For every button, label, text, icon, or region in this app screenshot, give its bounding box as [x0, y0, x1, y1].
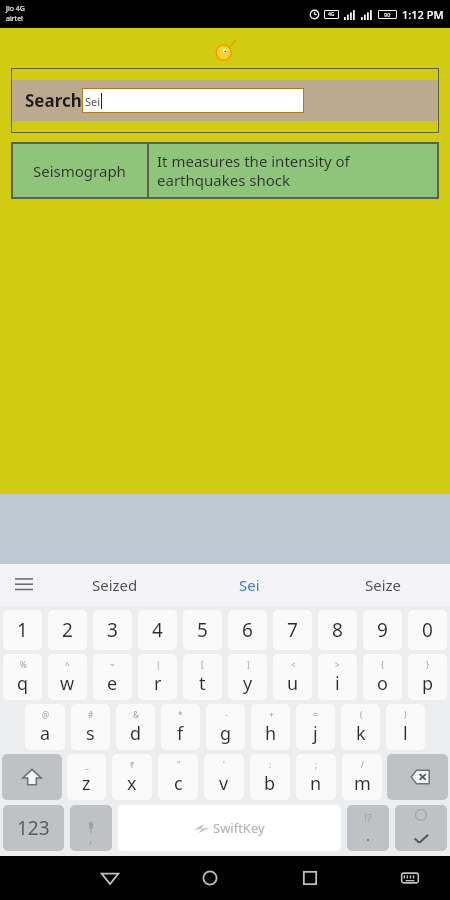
staticText: h: [265, 721, 277, 746]
staticText: /: [361, 759, 364, 770]
button[interactable]: 123: [3, 805, 64, 851]
button[interactable]: Menu: [8, 569, 40, 601]
staticText: w: [60, 671, 75, 696]
button[interactable]: /: [342, 754, 382, 800]
button[interactable]: 0: [408, 610, 447, 650]
button[interactable]: 1: [3, 610, 42, 650]
staticText: f: [177, 721, 184, 746]
staticText: !?: [364, 810, 372, 825]
button[interactable]: ': [204, 754, 244, 800]
button[interactable]: {: [363, 654, 402, 700]
staticText: 1: [17, 617, 28, 643]
staticText: j: [313, 721, 318, 746]
button[interactable]: Recents: [290, 858, 330, 898]
button[interactable]: &: [116, 704, 155, 750]
staticText: c: [174, 771, 183, 796]
button[interactable]: -: [206, 704, 245, 750]
button[interactable]: Home: [190, 858, 230, 898]
staticText: u: [287, 671, 299, 696]
button[interactable]: ~: [93, 654, 132, 700]
staticText: d: [130, 721, 142, 746]
staticText: r: [154, 671, 162, 696]
staticText: Seized: [92, 575, 138, 595]
staticText: Jio 4G: [6, 4, 25, 14]
button[interactable]: ): [386, 704, 425, 750]
button[interactable]: Sei: [182, 564, 316, 606]
button[interactable]: 9: [363, 610, 402, 650]
button[interactable]: ": [158, 754, 198, 800]
staticText: [: [201, 659, 204, 670]
button[interactable]: }: [408, 654, 447, 700]
staticText: 7: [287, 617, 298, 643]
button[interactable]: :: [250, 754, 290, 800]
button[interactable]: <: [273, 654, 312, 700]
button[interactable]: Voice input: [70, 805, 112, 851]
staticText: _: [85, 759, 89, 770]
staticText: i: [335, 671, 340, 696]
staticText: =: [313, 709, 318, 720]
staticText: 5: [197, 617, 208, 643]
staticText: t: [199, 671, 206, 696]
button[interactable]: ₹: [112, 754, 152, 800]
staticText: Sei: [85, 94, 101, 109]
button[interactable]: Shift: [2, 754, 62, 800]
button[interactable]: +: [251, 704, 290, 750]
staticText: 123: [17, 815, 50, 841]
staticText: Seismograph: [33, 161, 126, 181]
button[interactable]: Back: [90, 858, 130, 898]
button[interactable]: 4: [138, 610, 177, 650]
button[interactable]: !?: [347, 805, 389, 851]
staticText: ": [177, 759, 181, 770]
button[interactable]: _: [67, 754, 106, 800]
staticText: b: [264, 771, 276, 796]
button[interactable]: Backspace: [387, 754, 448, 800]
staticText: 4G: [328, 11, 335, 18]
button[interactable]: *: [161, 704, 200, 750]
staticText: 4: [152, 617, 163, 643]
staticText: 0: [422, 617, 433, 643]
button[interactable]: Space: [118, 805, 341, 851]
staticText: {: [381, 659, 385, 670]
button[interactable]: 5: [183, 610, 222, 650]
button[interactable]: Seismograph: [11, 142, 439, 199]
staticText: l: [403, 721, 408, 746]
button[interactable]: ]: [228, 654, 267, 700]
staticText: k: [356, 721, 366, 746]
button[interactable]: Enter: [395, 805, 447, 851]
button[interactable]: Hide keyboard: [390, 858, 430, 898]
staticText: 6: [242, 617, 253, 643]
staticText: 90: [384, 11, 391, 18]
button[interactable]: ;: [296, 754, 336, 800]
staticText: ]: [247, 659, 250, 670]
staticText: }: [426, 659, 430, 670]
staticText: -: [225, 709, 228, 720]
button[interactable]: %: [3, 654, 42, 700]
staticText: Seize: [365, 575, 402, 595]
button[interactable]: Seize: [316, 564, 450, 606]
button[interactable]: Search: [12, 80, 438, 121]
staticText: &: [133, 709, 139, 720]
button[interactable]: (: [341, 704, 380, 750]
button[interactable]: 3: [93, 610, 132, 650]
staticText: v: [219, 771, 229, 796]
staticText: ^: [65, 659, 70, 670]
button[interactable]: @: [25, 704, 65, 750]
button[interactable]: >: [318, 654, 357, 700]
button[interactable]: 6: [228, 610, 267, 650]
staticText: SwiftKey: [213, 819, 265, 837]
button[interactable]: ^: [48, 654, 87, 700]
staticText: >: [335, 659, 340, 670]
button[interactable]: #: [71, 704, 110, 750]
staticText: Search: [25, 89, 82, 112]
button[interactable]: |: [138, 654, 177, 700]
staticText: e: [107, 671, 118, 696]
staticText: (: [360, 709, 363, 720]
button[interactable]: [: [183, 654, 222, 700]
button[interactable]: 2: [48, 610, 87, 650]
button[interactable]: Seized: [48, 564, 182, 606]
button[interactable]: 8: [318, 610, 357, 650]
staticText: n: [310, 771, 322, 796]
button[interactable]: =: [296, 704, 335, 750]
staticText: .: [366, 825, 371, 845]
button[interactable]: 7: [273, 610, 312, 650]
